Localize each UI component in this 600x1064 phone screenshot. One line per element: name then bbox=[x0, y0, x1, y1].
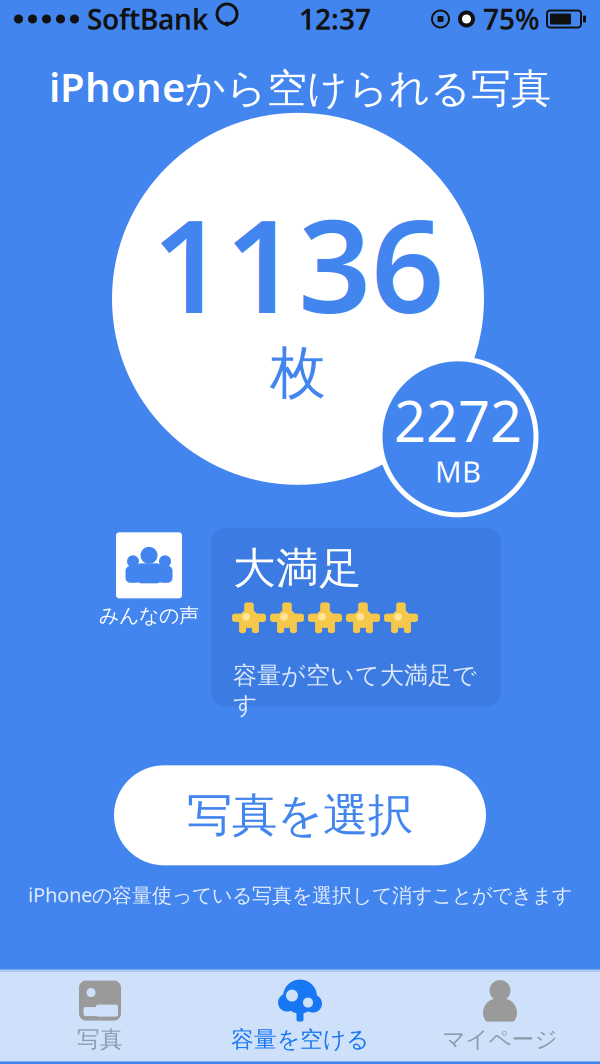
staticText: iPhoneから空けられる写真 bbox=[49, 60, 551, 113]
staticText: 写真を選択 bbox=[187, 787, 413, 843]
staticText: 12:37 bbox=[299, 0, 371, 38]
staticText: MB bbox=[435, 451, 481, 490]
staticText: マイページ bbox=[442, 1026, 557, 1053]
staticText: 容量が空いて大満足です bbox=[233, 661, 477, 720]
staticText: 枚 bbox=[270, 338, 326, 407]
button[interactable]: 写真 bbox=[0, 972, 200, 1061]
button[interactable]: マイページ bbox=[400, 972, 600, 1061]
staticText: みんなの声 bbox=[99, 603, 199, 628]
staticText: 2272 bbox=[394, 383, 522, 458]
button[interactable]: 写真を選択 bbox=[114, 765, 486, 865]
staticText: 75% bbox=[483, 0, 540, 38]
staticText: 容量を空ける bbox=[231, 1026, 369, 1053]
staticText: iPhoneの容量使っている写真を選択して消すことができます bbox=[28, 881, 572, 908]
staticText: 大満足 bbox=[233, 542, 362, 595]
staticText: 写真 bbox=[77, 1026, 123, 1053]
staticText: SoftBank bbox=[87, 0, 208, 38]
staticText: 1136 bbox=[152, 178, 444, 348]
button[interactable]: 容量を空ける bbox=[200, 972, 400, 1061]
